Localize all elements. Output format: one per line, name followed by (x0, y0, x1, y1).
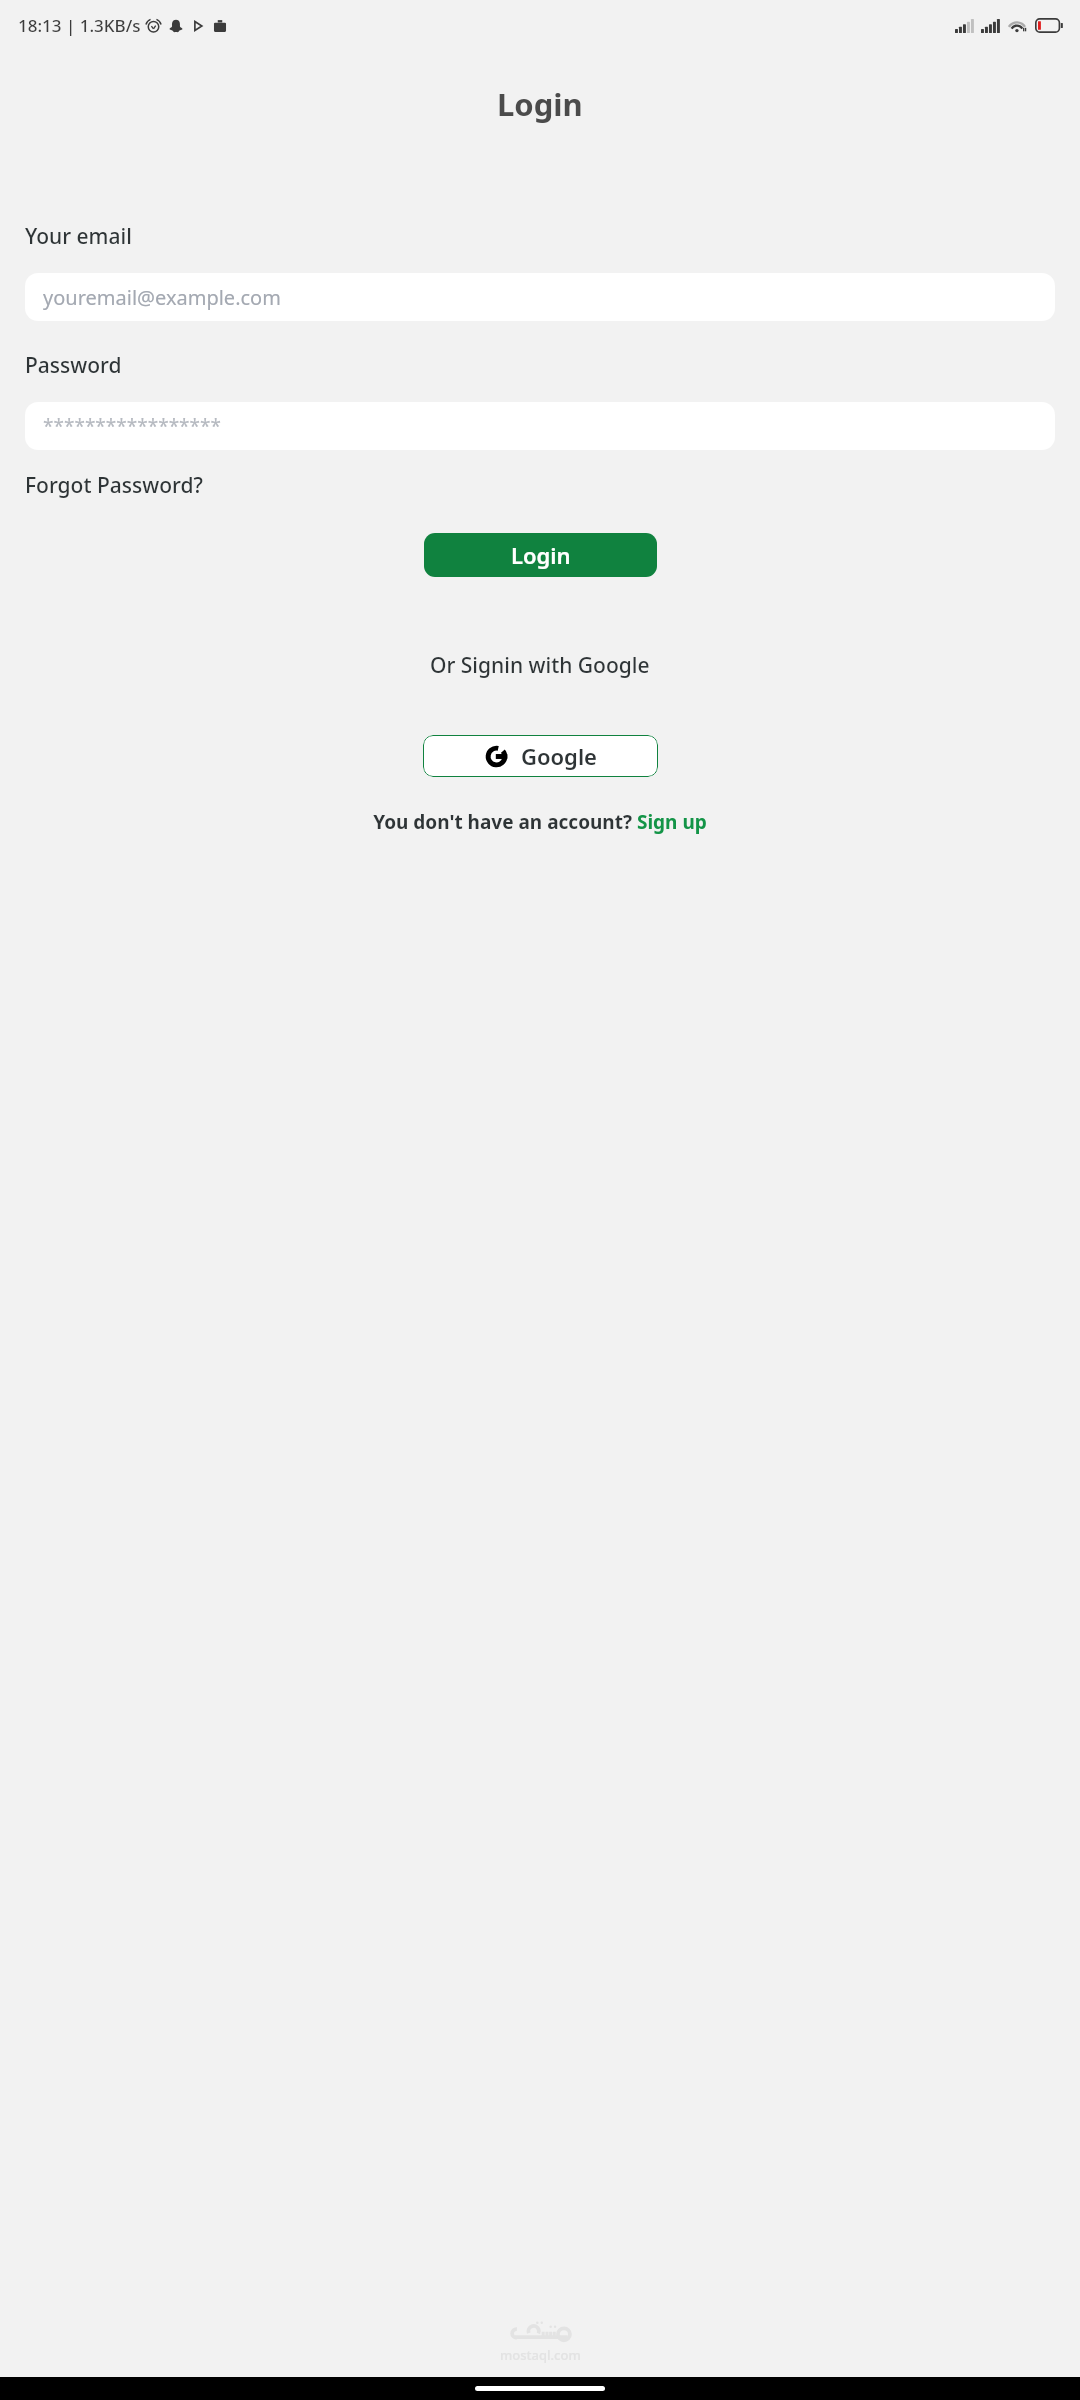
button[interactable]: You don't have an account? Sign up (369, 805, 711, 839)
staticText: Your email (25, 222, 132, 251)
button[interactable]: ***************** (25, 402, 1055, 450)
staticText: youremail@example.com (43, 284, 281, 311)
staticText: Password (25, 351, 122, 380)
staticText: Or Signin with Google (430, 651, 650, 680)
staticText: mostaql.com (500, 2346, 581, 2364)
staticText: Login (497, 83, 583, 125)
staticText: You don't have an account? Sign up (373, 809, 707, 835)
button[interactable]: Sign in with Google (423, 735, 658, 777)
staticText: ***************** (43, 413, 221, 439)
other: Sign in with Google (485, 745, 508, 768)
staticText: Google (521, 741, 597, 771)
button[interactable]: youremail@example.com (25, 273, 1055, 321)
staticText: Login (511, 540, 571, 570)
staticText: 18:13 | 1.3KB/s (18, 14, 141, 37)
button[interactable]: Login (424, 533, 657, 577)
button[interactable]: Forgot Password? (23, 468, 205, 503)
staticText: Forgot Password? (25, 471, 203, 500)
